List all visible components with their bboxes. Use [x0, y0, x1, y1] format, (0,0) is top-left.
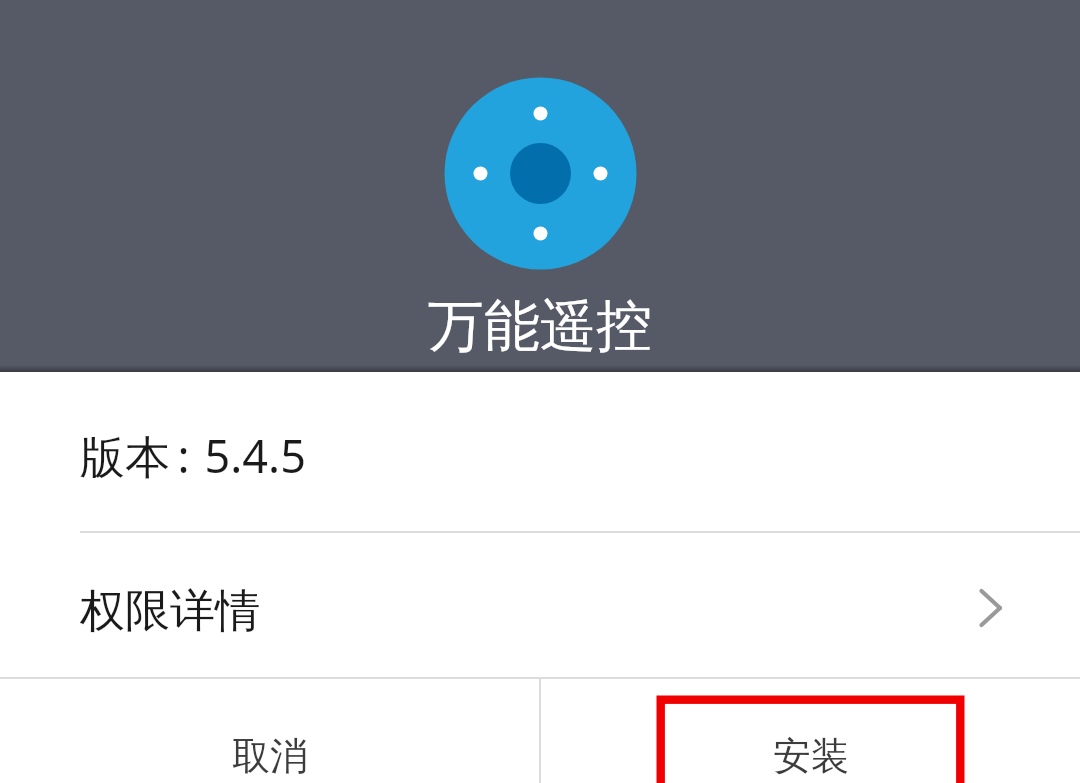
button[interactable]: 安装 [541, 679, 1080, 783]
staticText: 权限详情 [80, 583, 260, 640]
other: Open permission details [979, 586, 1023, 630]
other: 万能遥控 app icon [440, 73, 640, 273]
button[interactable]: 取消 [0, 679, 539, 783]
staticText: 取消 [232, 732, 308, 780]
staticText: 万能遥控 [428, 291, 652, 362]
button[interactable]: 权限详情 [0, 533, 1080, 677]
staticText: 安装 [773, 732, 849, 780]
staticText: 版本 : 5.4.5 [80, 425, 306, 486]
